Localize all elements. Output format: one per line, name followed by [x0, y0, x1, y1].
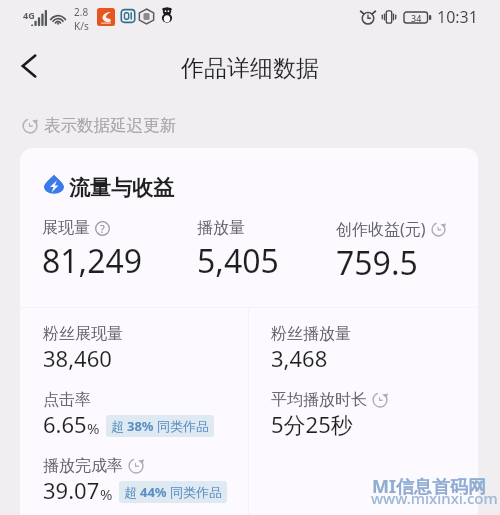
staticText: 创作收益(元) — [336, 218, 426, 240]
staticText: 34 — [411, 12, 422, 24]
staticText: ? — [100, 221, 105, 236]
staticText: 播放量 — [197, 218, 245, 238]
staticText: 超 — [124, 484, 137, 500]
staticText: 38% — [127, 417, 154, 435]
staticText: 4G — [23, 9, 35, 21]
staticText: 同类作品 — [157, 418, 209, 434]
staticText: 81,249 — [42, 239, 143, 283]
staticText: 3,468 — [271, 343, 328, 373]
staticText: www.mixinxi.com — [371, 488, 498, 508]
button[interactable]: Back — [6, 43, 52, 89]
staticText: 2.8 — [74, 5, 89, 19]
staticText: K/s — [74, 19, 89, 33]
staticText: 超 — [111, 418, 124, 434]
staticText: 759.5 — [336, 241, 418, 285]
staticText: 5分25秒 — [271, 409, 353, 439]
staticText: 流量与收益 — [69, 175, 174, 201]
staticText: 粉丝展现量 — [43, 324, 123, 344]
staticText: 播放完成率 — [43, 456, 123, 476]
staticText: 表示数据延迟更新 — [44, 115, 176, 136]
staticText: % — [100, 484, 113, 504]
staticText: 点击率 — [43, 390, 91, 410]
staticText: 平均播放时长 — [271, 390, 367, 410]
staticText: 作品详细数据 — [181, 54, 319, 83]
staticText: 粉丝播放量 — [271, 324, 351, 344]
staticText: 10:31 — [437, 6, 478, 28]
staticText: 展现量 — [42, 218, 90, 238]
staticText: 5,405 — [197, 239, 279, 283]
staticText: 44% — [140, 483, 167, 501]
staticText: MI信息首码网 — [372, 474, 486, 499]
staticText: 同类作品 — [170, 484, 222, 500]
staticText: % — [87, 418, 100, 438]
staticText: 39.07 — [43, 475, 100, 505]
staticText: 6.65 — [43, 409, 87, 439]
staticText: 38,460 — [43, 343, 112, 373]
